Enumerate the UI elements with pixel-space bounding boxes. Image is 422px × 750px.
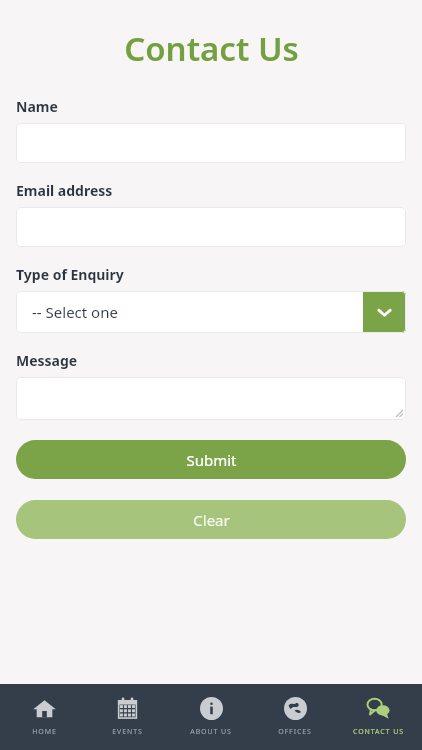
button[interactable]: HOME xyxy=(4,697,84,737)
staticText: Contact Us xyxy=(124,26,299,71)
button[interactable] xyxy=(16,207,406,247)
staticText: Type of Enquiry xyxy=(16,265,124,284)
staticText: -- Select one xyxy=(32,302,363,322)
staticText: OFFICES xyxy=(278,727,312,737)
button[interactable]: CONTACT US xyxy=(338,697,418,737)
button[interactable]: EVENTS xyxy=(87,697,167,737)
button[interactable]: OFFICES xyxy=(255,697,335,737)
button[interactable] xyxy=(16,123,406,163)
button[interactable] xyxy=(16,377,406,420)
button[interactable]: Open enquiry type list xyxy=(363,291,406,333)
button[interactable]: ABOUT US xyxy=(171,697,251,737)
staticText: Clear xyxy=(193,510,230,530)
button[interactable]: -- Select one xyxy=(16,291,406,333)
staticText: Name xyxy=(16,97,58,116)
staticText: Message xyxy=(16,351,78,370)
staticText: HOME xyxy=(32,727,57,737)
button[interactable]: Submit xyxy=(16,440,406,479)
staticText: ABOUT US xyxy=(190,727,232,737)
staticText: Email address xyxy=(16,181,113,200)
staticText: CONTACT US xyxy=(353,727,404,737)
staticText: Submit xyxy=(186,450,237,470)
button[interactable]: Clear xyxy=(16,500,406,539)
staticText: EVENTS xyxy=(112,727,143,737)
